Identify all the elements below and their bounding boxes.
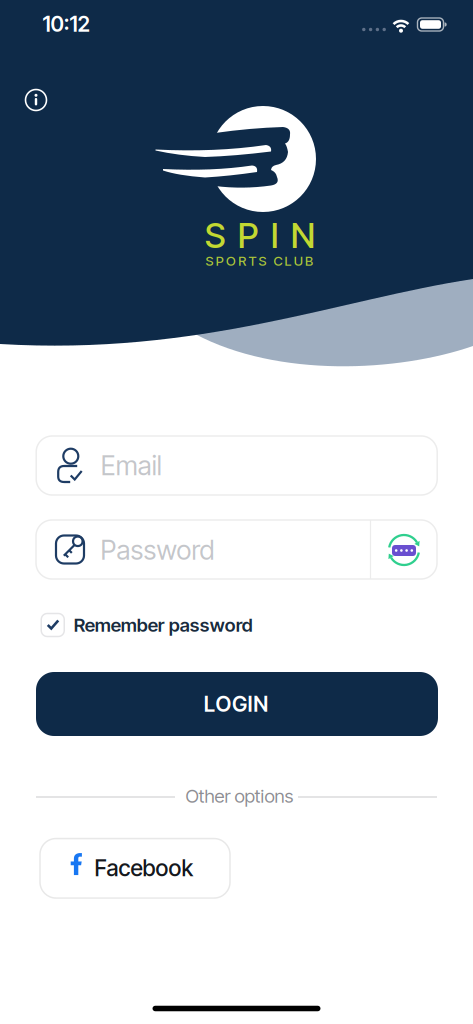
staticText: R (238, 253, 246, 269)
button[interactable]: L (36, 672, 438, 736)
staticText: Email (101, 450, 162, 481)
staticText: S (206, 253, 214, 269)
staticText: I (248, 691, 253, 717)
staticText: I (271, 215, 279, 256)
staticText: Remember password (74, 614, 253, 636)
staticText: S (205, 215, 226, 256)
button[interactable]: Remember password (41, 613, 253, 636)
staticText: Password (100, 534, 214, 566)
staticText: N (253, 691, 268, 717)
staticText: 10:12 (42, 11, 89, 37)
button[interactable]: Generate password (387, 533, 421, 567)
staticText: G (232, 691, 247, 717)
staticText: B (305, 253, 313, 269)
staticText: P (238, 215, 259, 256)
staticText: N (291, 215, 315, 256)
staticText: O (226, 253, 236, 269)
staticText: Other options (185, 785, 293, 807)
staticText: Facebook (94, 855, 193, 881)
staticText: O (215, 691, 231, 717)
staticText: U (294, 253, 303, 269)
button[interactable]: Password (36, 520, 437, 579)
staticText: P (216, 253, 224, 269)
staticText: T (248, 253, 256, 269)
staticText: L (285, 253, 292, 269)
button[interactable]: Info (24, 88, 47, 111)
button[interactable]: Facebook (40, 838, 230, 898)
button[interactable]: Email (36, 436, 437, 495)
staticText: C (273, 253, 282, 269)
staticText: L (204, 691, 215, 717)
staticText: S (259, 253, 267, 269)
